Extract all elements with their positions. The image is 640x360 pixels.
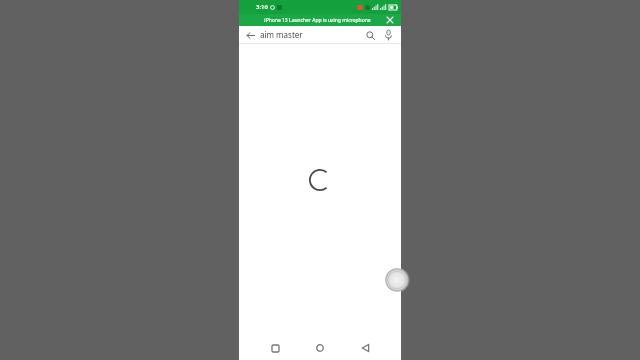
button[interactable]: Assistive touch: [384, 267, 410, 293]
button[interactable]: Home: [310, 338, 330, 358]
staticText: iPhone 13 Launcher App is using micropho…: [264, 17, 371, 24]
button[interactable]: aim master: [260, 29, 362, 40]
button[interactable]: Recent apps: [265, 338, 285, 358]
button[interactable]: Search: [362, 27, 378, 43]
button[interactable]: Close microphone notice: [385, 15, 395, 25]
button[interactable]: Back: [355, 338, 375, 358]
button[interactable]: Back: [243, 28, 257, 42]
staticText: 3:16: [256, 3, 268, 11]
button[interactable]: Voice search: [380, 27, 396, 43]
